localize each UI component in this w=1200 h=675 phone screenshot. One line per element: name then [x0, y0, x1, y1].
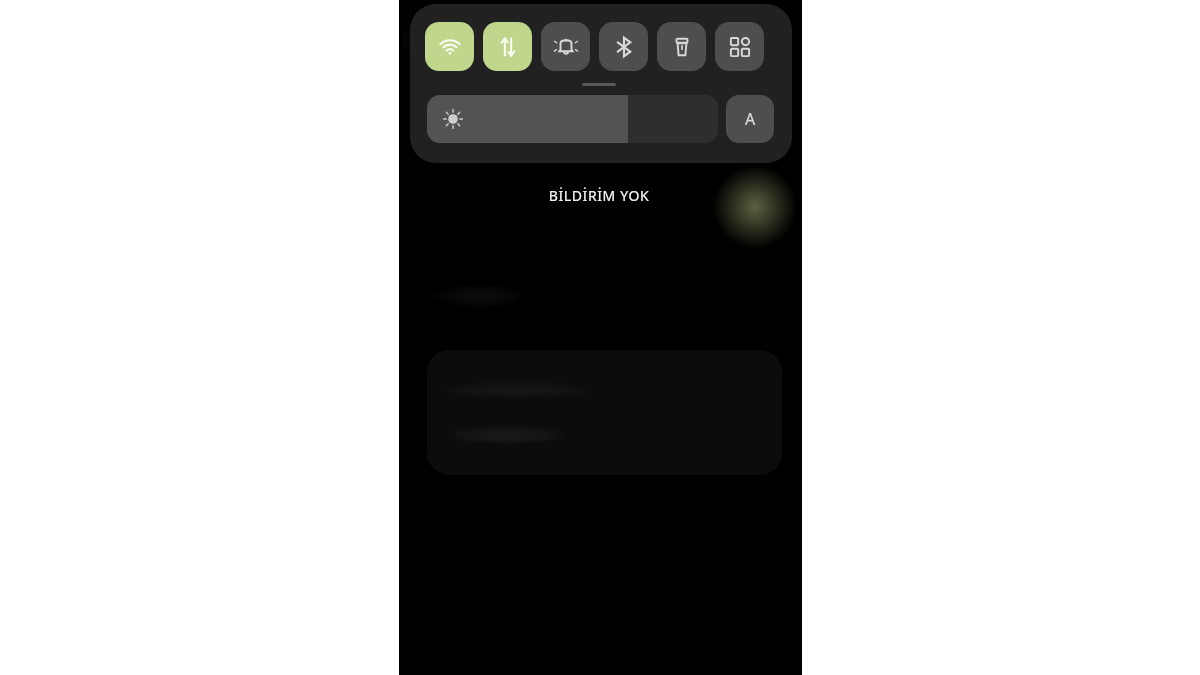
- button[interactable]: Mobile data: [483, 22, 532, 71]
- button[interactable]: A: [726, 95, 774, 143]
- button[interactable]: Wi-Fi: [425, 22, 474, 71]
- button[interactable]: More settings: [715, 22, 764, 71]
- staticText: A: [745, 108, 756, 130]
- button[interactable]: Ringtone: [541, 22, 590, 71]
- button[interactable]: Flashlight: [657, 22, 706, 71]
- button[interactable]: Bluetooth: [599, 22, 648, 71]
- staticText: BİLDİRİM YOK: [509, 186, 689, 205]
- button[interactable]: [427, 95, 718, 143]
